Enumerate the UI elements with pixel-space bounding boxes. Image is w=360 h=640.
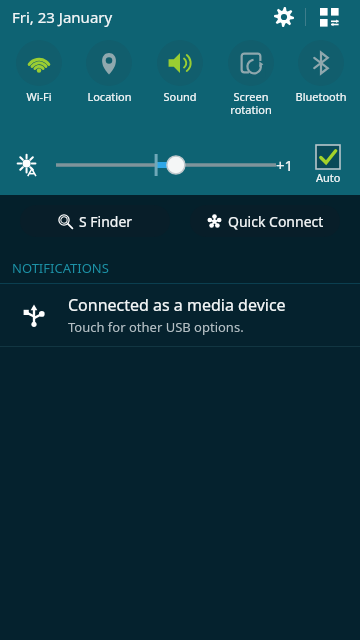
staticText: Location [87, 89, 132, 104]
staticText: +1 [276, 155, 294, 175]
staticText: NOTIFICATIONS [12, 259, 109, 277]
button[interactable]: Bluetooth [287, 40, 355, 104]
button[interactable]: Brightness [0, 141, 56, 189]
staticText: Touch for other USB options. [68, 318, 244, 336]
button[interactable]: Quick Connect [190, 205, 340, 237]
button[interactable]: Sound [146, 40, 214, 104]
button[interactable]: Screen rotation [217, 40, 285, 117]
staticText: Wi-Fi [26, 89, 52, 104]
button[interactable]: Auto [302, 145, 354, 185]
button[interactable] [56, 141, 276, 189]
button[interactable]: S Finder [20, 205, 170, 237]
button[interactable]: Connected as a media device [0, 284, 360, 346]
staticText: Sound [163, 89, 197, 104]
staticText: Connected as a media device [68, 294, 286, 316]
button[interactable]: Location [75, 40, 143, 104]
button[interactable]: Wi-Fi [5, 40, 73, 104]
button[interactable]: Edit quick settings [312, 0, 346, 34]
staticText: Bluetooth [295, 89, 347, 104]
staticText: Fri, 23 January [12, 7, 113, 27]
staticText: Auto [316, 170, 341, 185]
button[interactable]: Settings [267, 0, 301, 34]
staticText: Screen rotation [230, 89, 272, 117]
staticText: Quick Connect [228, 212, 324, 231]
staticText: S Finder [79, 212, 133, 231]
